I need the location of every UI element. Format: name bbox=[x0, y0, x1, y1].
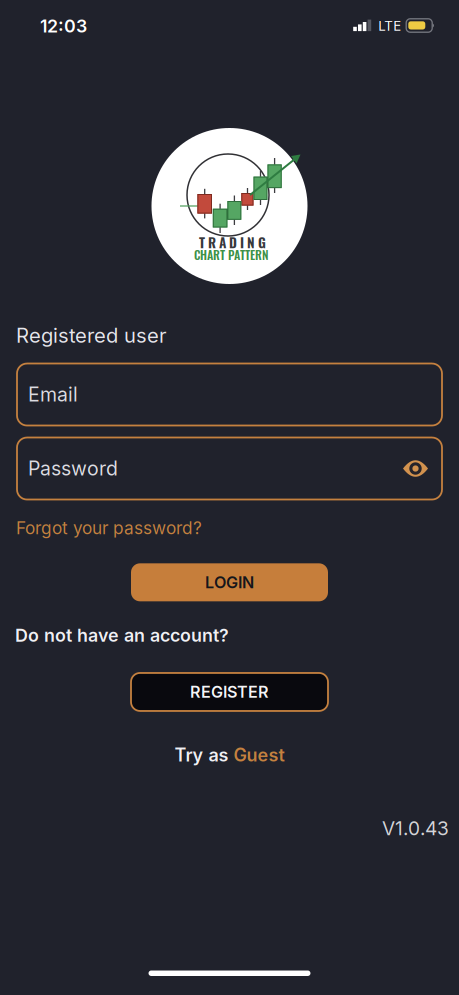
staticText: Registered user bbox=[16, 323, 167, 347]
button[interactable]: REGISTER bbox=[131, 673, 328, 711]
button[interactable]: LOGIN bbox=[131, 563, 328, 601]
staticText: LTE bbox=[378, 18, 401, 34]
button[interactable]: Email bbox=[0, 363, 459, 425]
staticText: V1.0.43 bbox=[382, 817, 449, 840]
staticText: Password bbox=[28, 457, 118, 480]
button[interactable]: Show password bbox=[403, 459, 428, 477]
staticText: CHART PATTERN bbox=[194, 246, 269, 263]
staticText: REGISTER bbox=[190, 682, 269, 702]
staticText: Forgot your password? bbox=[16, 517, 202, 538]
staticText: T R A D I N G bbox=[199, 232, 266, 252]
staticText: Do not have an account? bbox=[15, 624, 229, 646]
staticText: Email bbox=[28, 383, 78, 406]
staticText: Guest bbox=[233, 744, 284, 766]
button[interactable]: Forgot your password? bbox=[0, 517, 459, 538]
staticText: LOGIN bbox=[205, 573, 254, 592]
staticText: 12:03 bbox=[40, 15, 87, 37]
button[interactable]: Password bbox=[0, 437, 459, 499]
staticText: Try as bbox=[174, 744, 228, 766]
button[interactable]: Try as bbox=[174, 744, 284, 766]
